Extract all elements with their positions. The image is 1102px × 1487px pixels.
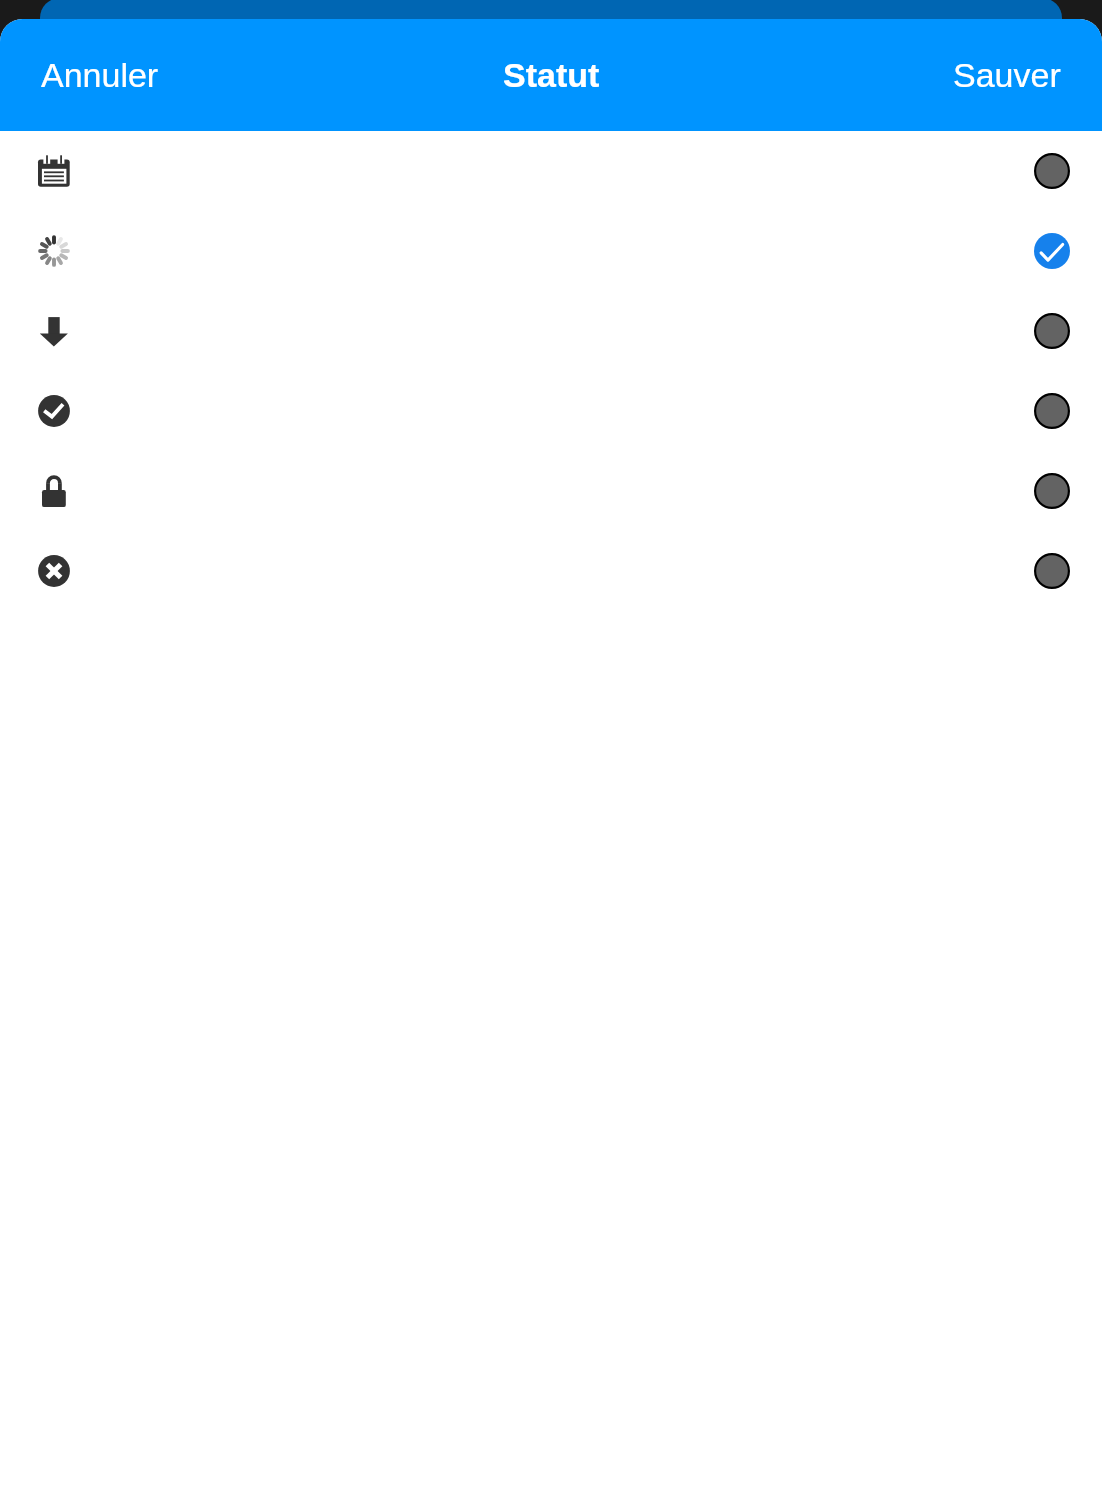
button[interactable]: Annule	[0, 531, 1102, 611]
button[interactable]: Termine	[0, 371, 1102, 451]
button[interactable]: Verrouille	[0, 451, 1102, 531]
button[interactable]: En cours	[0, 211, 1102, 291]
button[interactable]: Sauver	[939, 46, 1102, 104]
staticText: Statut	[503, 56, 600, 94]
button[interactable]: A telecharger	[0, 291, 1102, 371]
button[interactable]: Planifie	[0, 131, 1102, 211]
button[interactable]: Annuler	[0, 46, 173, 104]
